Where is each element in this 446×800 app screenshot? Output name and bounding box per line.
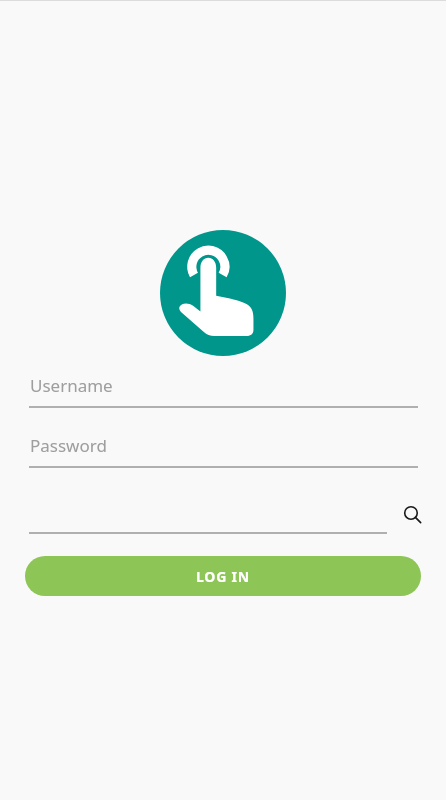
button[interactable]: Username <box>0 374 446 408</box>
button[interactable]: Search <box>398 500 426 528</box>
button[interactable]: Password <box>0 434 446 468</box>
button[interactable]: LOG IN <box>25 556 421 596</box>
staticText: Password <box>30 434 107 457</box>
staticText: LOG IN <box>196 567 251 586</box>
staticText: Username <box>30 374 113 397</box>
